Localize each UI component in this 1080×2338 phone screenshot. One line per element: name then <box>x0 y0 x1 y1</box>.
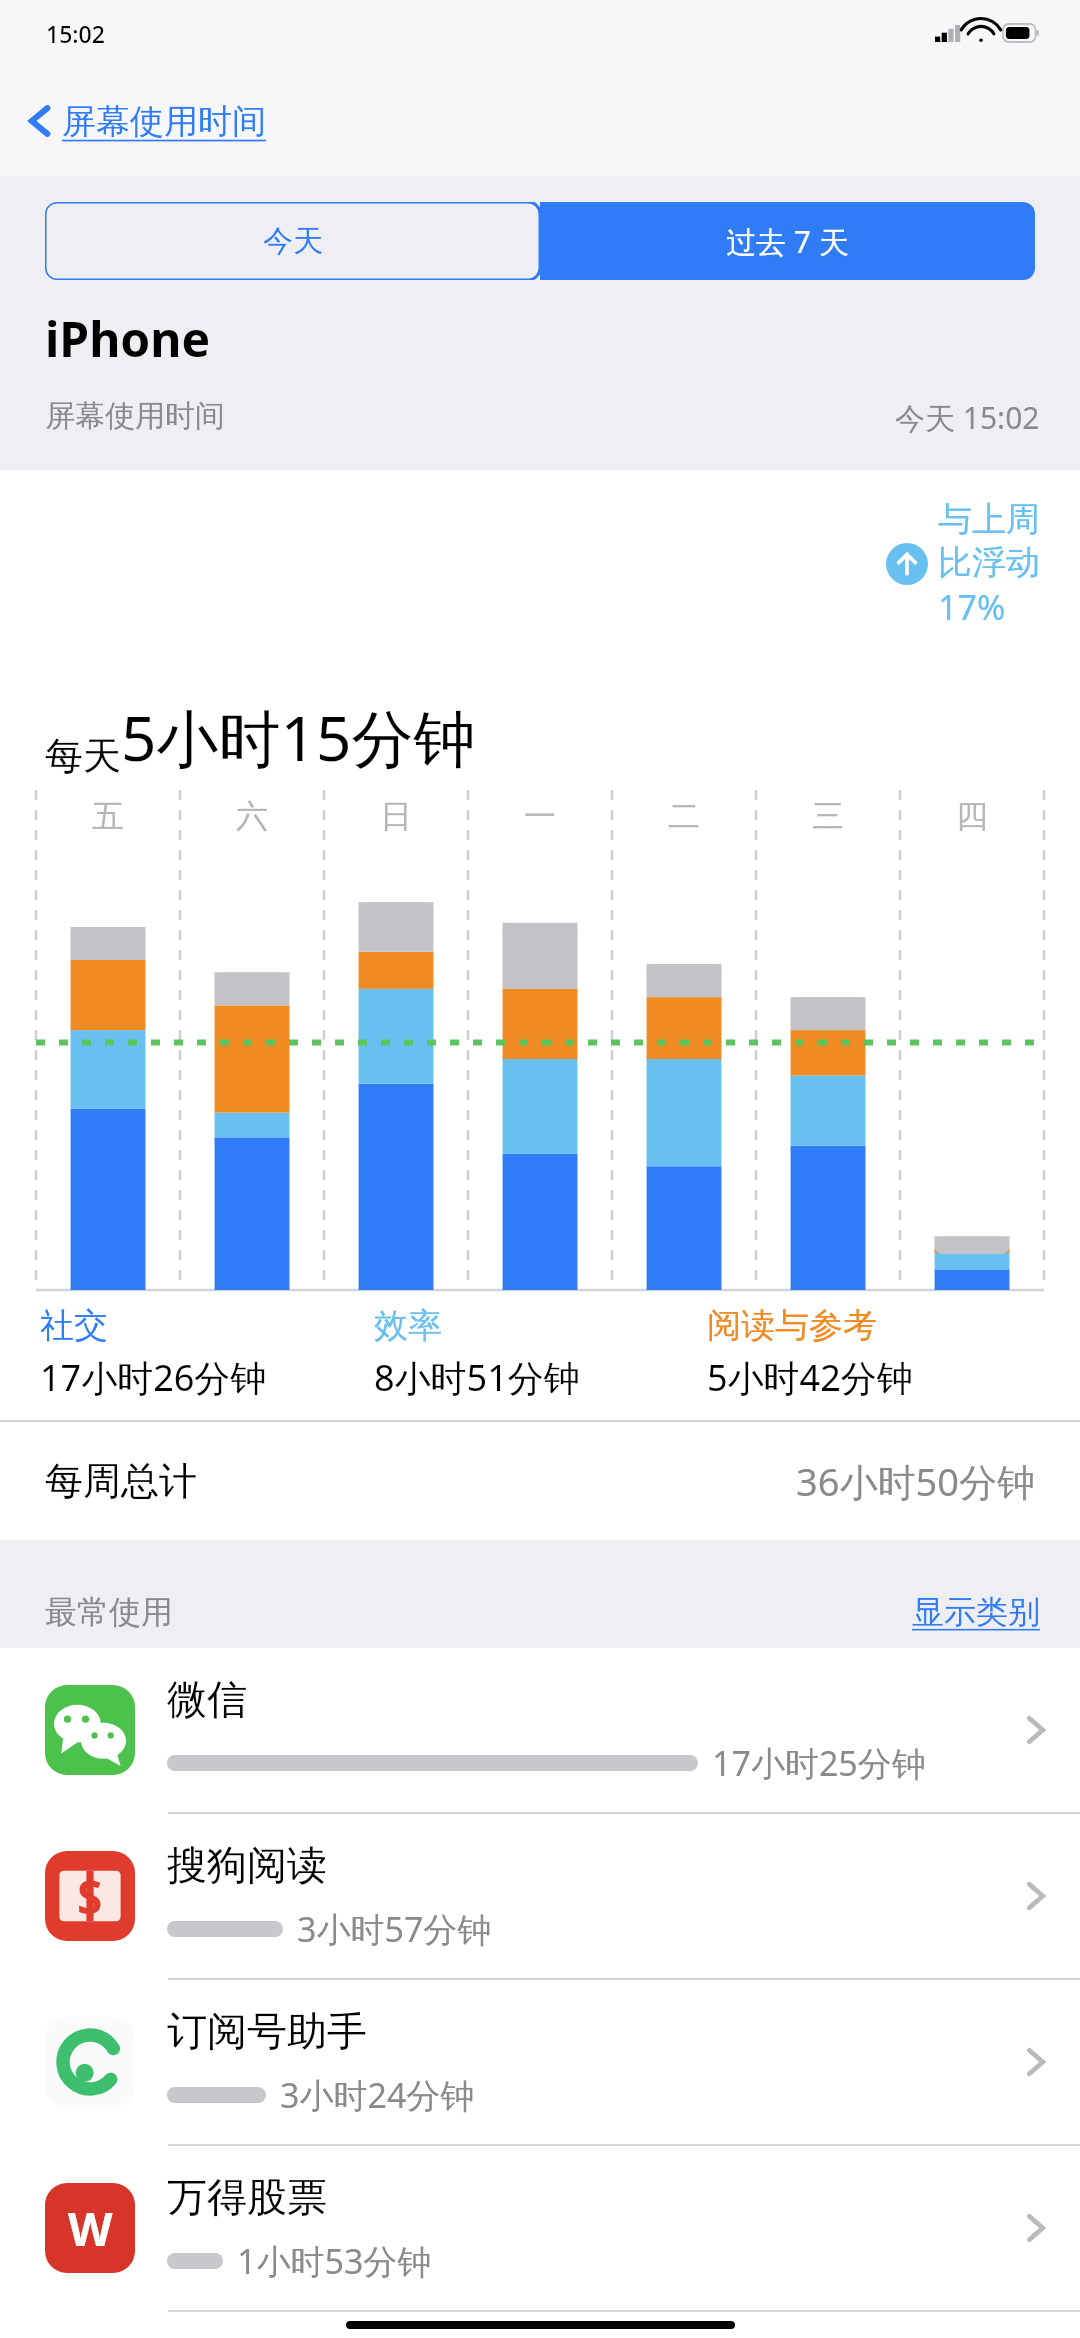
staticText: 每天 <box>45 732 121 780</box>
staticText: 显示类别 <box>912 1592 1040 1632</box>
staticText: 效率 <box>374 1304 442 1347</box>
staticText: 四 <box>956 796 988 836</box>
button[interactable]: 过去 7 天 <box>540 202 1035 280</box>
staticText: 1小时53分钟 <box>237 2238 432 2284</box>
staticText: 日 <box>380 796 412 836</box>
staticText: 五 <box>92 796 124 836</box>
staticText: 屏幕使用时间 <box>45 397 225 435</box>
staticText: S <box>77 1865 103 1928</box>
button[interactable]: 订阅号助手 <box>0 1980 1080 2144</box>
staticText: iPhone <box>45 306 211 371</box>
staticText: 每周总计 <box>45 1457 197 1505</box>
staticText: 微信 <box>167 1674 247 1724</box>
staticText: 比浮动 <box>938 541 1040 584</box>
staticText: 最常使用 <box>45 1592 173 1632</box>
button[interactable]: 社交 <box>40 1304 374 1402</box>
staticText: 万得股票 <box>167 2172 327 2222</box>
staticText: 17小时26分钟 <box>40 1353 267 1402</box>
other: More <box>1024 2041 1048 2083</box>
staticText: 17% <box>938 584 1006 630</box>
button[interactable]: Back <box>0 66 1080 176</box>
staticText: 5小时15分钟 <box>121 695 476 780</box>
staticText: 与上周 <box>938 498 1040 541</box>
other: More <box>1024 2207 1048 2249</box>
staticText: 一 <box>524 796 556 836</box>
staticText: 搜狗阅读 <box>167 1840 327 1890</box>
staticText: 今天 <box>263 222 323 260</box>
staticText: 二 <box>668 796 700 836</box>
button[interactable]: 今天 <box>45 202 540 280</box>
other: Back <box>24 98 54 144</box>
staticText: 36小时50分钟 <box>796 1455 1035 1507</box>
button[interactable]: W <box>0 2146 1080 2310</box>
other: More <box>1024 1709 1048 1751</box>
staticText: 17小时25分钟 <box>712 1740 926 1786</box>
staticText: 15:02 <box>46 18 105 49</box>
button[interactable]: 每周总计 <box>0 1422 1080 1540</box>
button[interactable]: 效率 <box>374 1304 707 1402</box>
staticText: 屏幕使用时间 <box>62 100 266 143</box>
other: More <box>1024 1875 1048 1917</box>
button[interactable]: S <box>0 1814 1080 1978</box>
button[interactable]: 阅读与参考 <box>707 1304 1040 1402</box>
staticText: 六 <box>236 796 268 836</box>
staticText: W <box>68 2197 113 2260</box>
button[interactable]: 显示类别 <box>912 1592 1040 1632</box>
staticText: 3小时24分钟 <box>280 2072 475 2118</box>
staticText: 三 <box>812 796 844 836</box>
button[interactable]: 微信 <box>0 1648 1080 1812</box>
staticText: 3小时57分钟 <box>297 1906 492 1952</box>
staticText: 过去 7 天 <box>726 221 849 262</box>
staticText: 5小时42分钟 <box>707 1353 913 1402</box>
staticText: 订阅号助手 <box>167 2006 367 2056</box>
staticText: 8小时51分钟 <box>374 1353 580 1402</box>
staticText: 今天 15:02 <box>895 397 1040 438</box>
staticText: 阅读与参考 <box>707 1304 877 1347</box>
staticText: 社交 <box>40 1304 108 1347</box>
